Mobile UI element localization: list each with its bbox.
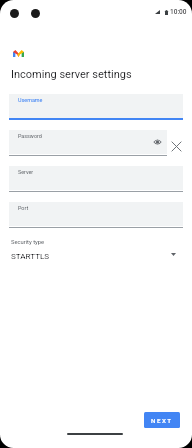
button[interactable]: Show password [150, 135, 164, 149]
staticText: STARTTLS [11, 251, 50, 260]
staticText: Password [18, 133, 42, 139]
staticText: NEXT [151, 417, 173, 424]
staticText: 10:00 [170, 8, 187, 16]
button[interactable]: Username [9, 94, 183, 120]
staticText: Incoming server settings [11, 68, 132, 81]
button[interactable]: Server [9, 166, 183, 192]
staticText: Username [18, 97, 43, 103]
staticText: Server [18, 169, 34, 175]
button[interactable]: NEXT [144, 412, 180, 428]
button[interactable]: Password [9, 130, 167, 156]
staticText: Port [18, 205, 29, 211]
staticText: Security type [11, 239, 45, 246]
button[interactable]: Clear [169, 139, 183, 153]
button[interactable]: Port [9, 202, 183, 228]
button[interactable]: Security type [0, 235, 192, 263]
